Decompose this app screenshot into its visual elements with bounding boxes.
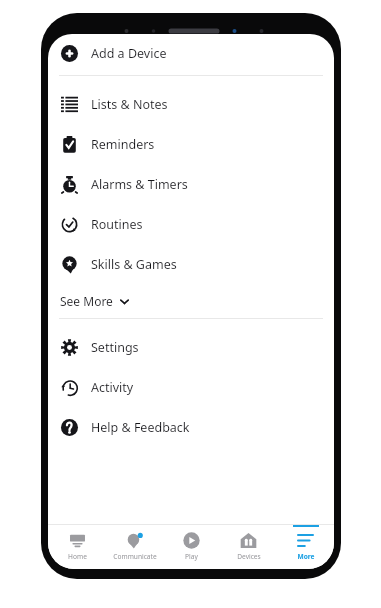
staticText: See More (60, 293, 113, 309)
button[interactable]: Devices (220, 525, 277, 569)
button[interactable]: More (277, 525, 334, 569)
staticText: Alarms & Timers (91, 176, 188, 193)
button[interactable]: Lists & Notes (48, 84, 334, 124)
staticText: Skills & Games (91, 256, 177, 273)
button[interactable]: Routines (48, 204, 334, 244)
staticText: Activity (91, 379, 134, 396)
button[interactable]: Play (163, 525, 220, 569)
button[interactable]: Reminders (48, 124, 334, 164)
staticText: Reminders (91, 136, 155, 153)
staticText: Help & Feedback (91, 419, 190, 436)
button[interactable]: Home (48, 525, 106, 569)
staticText: Home (68, 552, 87, 561)
staticText: Devices (237, 552, 261, 561)
button[interactable]: Help & Feedback (48, 407, 334, 447)
button[interactable]: Communicate (106, 525, 163, 569)
button[interactable]: Skills & Games (48, 244, 334, 284)
staticText: Routines (91, 216, 143, 233)
staticText: Lists & Notes (91, 96, 168, 113)
button[interactable]: See More (60, 284, 334, 318)
button[interactable]: Alarms & Timers (48, 164, 334, 204)
staticText: Play (185, 552, 198, 561)
button[interactable]: Settings (48, 327, 334, 367)
button[interactable]: Add a Device (48, 34, 334, 73)
staticText: Communicate (113, 552, 157, 561)
staticText: Settings (91, 339, 139, 356)
button[interactable]: Activity (48, 367, 334, 407)
staticText: More (297, 552, 315, 561)
staticText: Add a Device (91, 45, 167, 62)
